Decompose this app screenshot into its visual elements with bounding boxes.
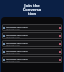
staticText: Message title here: [6, 33, 28, 36]
staticText: Message title here: [6, 25, 28, 28]
button[interactable]: Message title here: [2, 56, 62, 63]
button[interactable]: Message title here: [2, 48, 62, 55]
button[interactable]: Message title here: [2, 40, 62, 47]
staticText: secondary line: [6, 36, 20, 39]
staticText: Message title here: [6, 57, 28, 60]
staticText: Message title here: [6, 49, 28, 52]
staticText: secondary line: [6, 52, 20, 55]
staticText: secondary line: [6, 44, 20, 47]
staticText: Join the Conversation: [22, 3, 42, 16]
button[interactable]: Message title here: [2, 32, 62, 39]
button[interactable]: Message title here: [2, 24, 62, 31]
staticText: secondary line: [6, 60, 20, 63]
staticText: Message title here: [6, 41, 28, 44]
staticText: secondary line: [6, 28, 20, 31]
